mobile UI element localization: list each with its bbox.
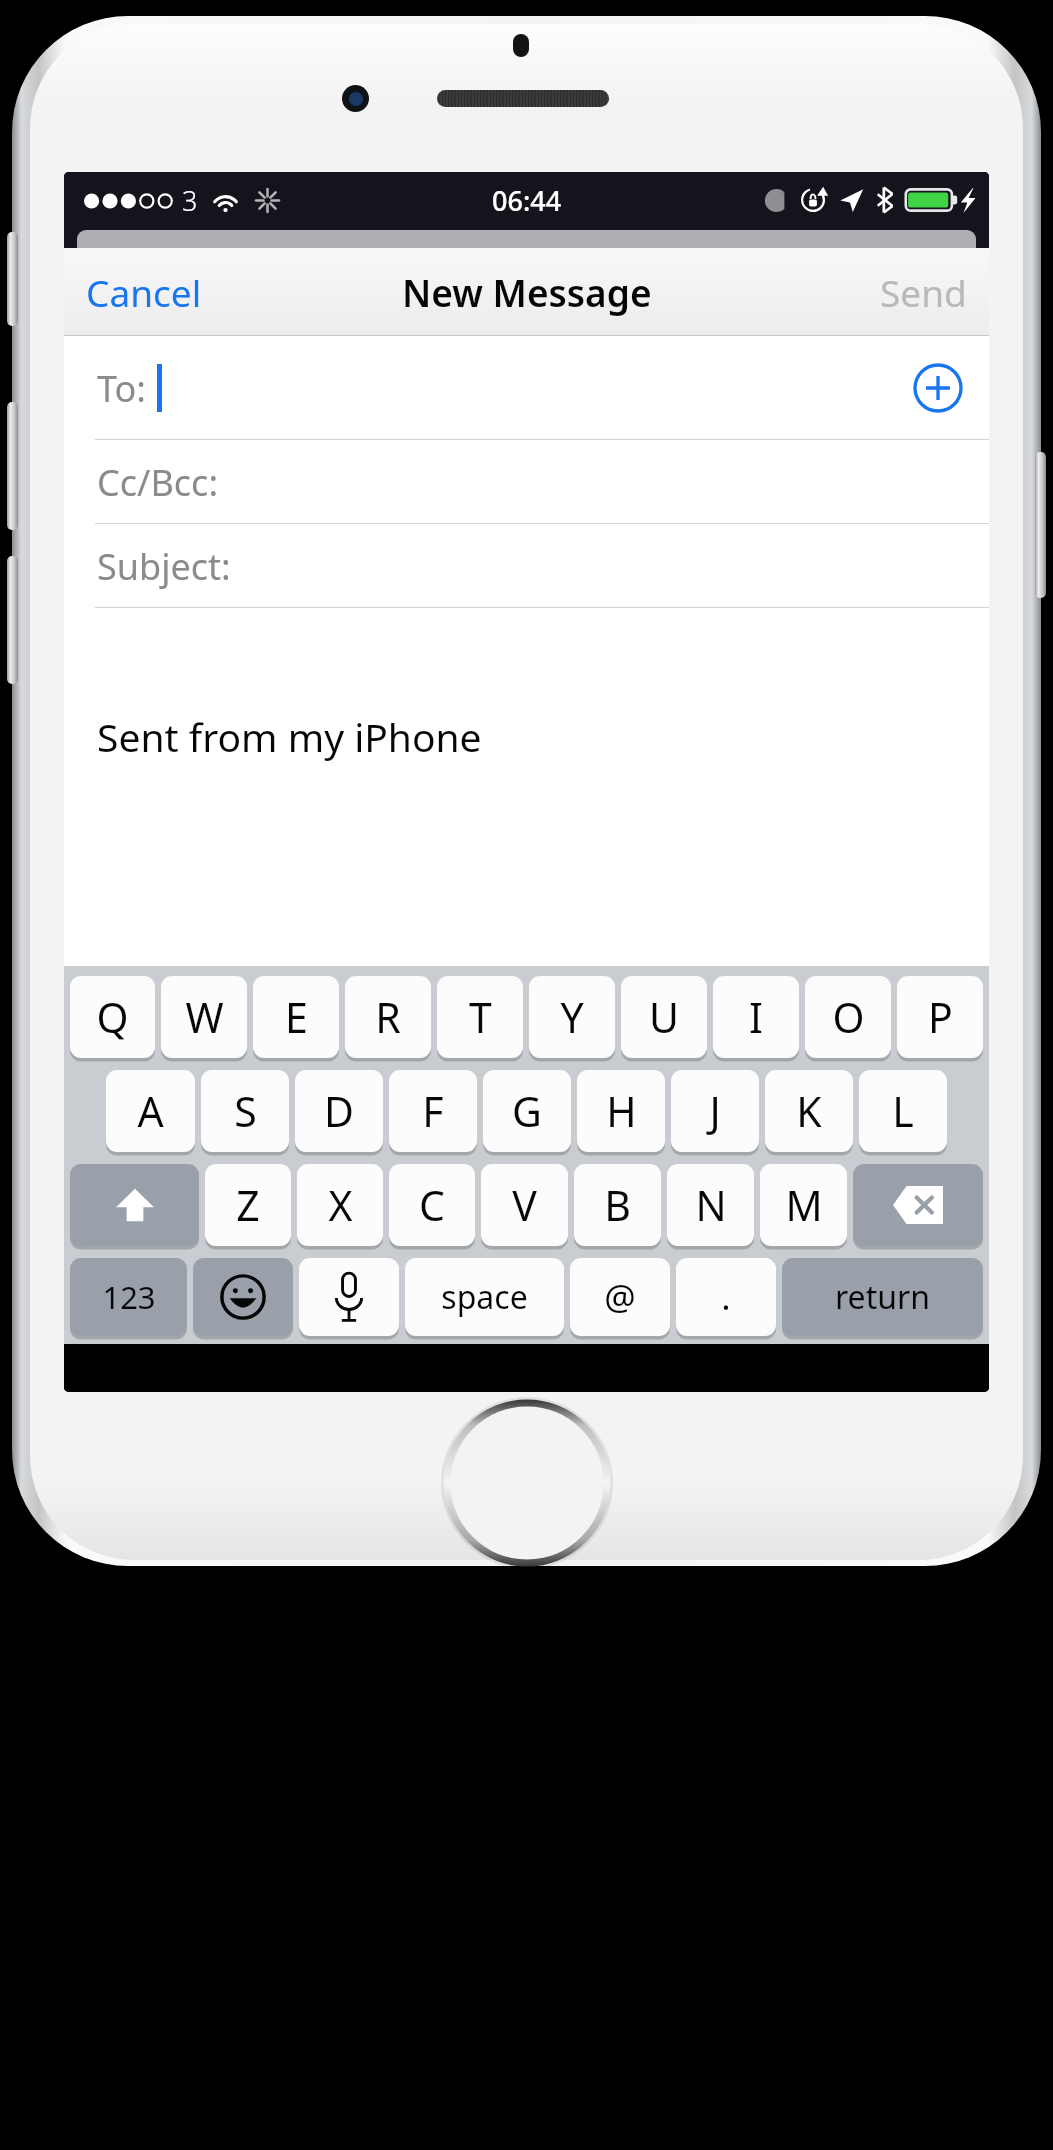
staticText: G <box>512 1083 542 1139</box>
staticText: F <box>422 1083 444 1139</box>
button[interactable]: To: <box>64 336 989 440</box>
button[interactable]: Emoji <box>193 1258 293 1336</box>
button[interactable]: W <box>161 976 247 1058</box>
staticText: B <box>604 1177 631 1233</box>
staticText: 3 <box>182 182 198 219</box>
button[interactable]: E <box>253 976 339 1058</box>
staticText: Send <box>880 267 967 317</box>
staticText: D <box>324 1083 354 1139</box>
staticText: To: <box>97 364 146 413</box>
staticText: 06:44 <box>492 182 562 219</box>
staticText: Y <box>560 989 584 1045</box>
staticText: 123 <box>102 1276 156 1318</box>
button[interactable]: Send <box>858 249 989 335</box>
button[interactable]: P <box>897 976 983 1058</box>
button[interactable]: Y <box>529 976 615 1058</box>
staticText: W <box>185 989 224 1045</box>
button[interactable]: return <box>782 1258 983 1336</box>
button[interactable]: C <box>389 1164 475 1246</box>
staticText: Z <box>236 1177 260 1233</box>
button[interactable]: Add contact <box>909 359 967 417</box>
button[interactable]: Numbers <box>70 1258 187 1336</box>
staticText: M <box>785 1177 823 1233</box>
button[interactable]: @ <box>570 1258 670 1336</box>
staticText: return <box>835 1275 930 1319</box>
staticText: @ <box>604 1273 636 1321</box>
staticText: Cc/Bcc: <box>97 458 219 507</box>
button[interactable]: A <box>106 1070 195 1152</box>
button[interactable]: M <box>760 1164 847 1246</box>
button[interactable]: Sent from my iPhone <box>64 608 989 966</box>
staticText: C <box>419 1177 445 1233</box>
staticText: P <box>928 989 953 1045</box>
staticText: A <box>137 1083 164 1139</box>
staticText: H <box>606 1083 637 1139</box>
button[interactable]: F <box>389 1070 477 1152</box>
button[interactable]: B <box>574 1164 661 1246</box>
button[interactable]: J <box>671 1070 759 1152</box>
button[interactable]: H <box>577 1070 665 1152</box>
button[interactable]: Shift <box>70 1164 199 1246</box>
staticText: O <box>832 989 865 1045</box>
button[interactable]: L <box>859 1070 947 1152</box>
staticText: E <box>285 989 308 1045</box>
button[interactable]: Cc/Bcc: <box>64 440 989 524</box>
button[interactable]: V <box>481 1164 568 1246</box>
staticText: . <box>721 1273 731 1321</box>
button[interactable]: G <box>483 1070 571 1152</box>
button[interactable]: space <box>405 1258 564 1336</box>
button[interactable]: Subject: <box>64 524 989 608</box>
button[interactable]: I <box>713 976 799 1058</box>
staticText: New Message <box>402 267 652 317</box>
staticText: S <box>234 1083 257 1139</box>
button[interactable]: Dictate <box>299 1258 399 1336</box>
button[interactable]: S <box>201 1070 289 1152</box>
button[interactable]: R <box>345 976 431 1058</box>
button[interactable]: U <box>621 976 707 1058</box>
button[interactable]: X <box>297 1164 383 1246</box>
button[interactable]: Cancel <box>64 249 224 335</box>
button[interactable]: . <box>676 1258 776 1336</box>
staticText: V <box>512 1177 537 1233</box>
staticText: T <box>469 989 492 1045</box>
staticText: L <box>892 1083 914 1139</box>
staticText: Cancel <box>86 267 202 317</box>
button[interactable]: O <box>805 976 891 1058</box>
staticText: Q <box>96 989 129 1045</box>
button[interactable]: K <box>765 1070 853 1152</box>
button[interactable]: N <box>667 1164 754 1246</box>
staticText: space <box>441 1275 528 1319</box>
staticText: J <box>709 1083 721 1139</box>
button[interactable]: D <box>295 1070 383 1152</box>
button[interactable]: Z <box>205 1164 291 1246</box>
staticText: U <box>649 989 679 1045</box>
staticText: Sent from my iPhone <box>97 710 482 763</box>
staticText: Subject: <box>97 542 231 591</box>
button[interactable]: Backspace <box>853 1164 983 1246</box>
staticText: X <box>328 1177 353 1233</box>
staticText: K <box>796 1083 822 1139</box>
staticText: R <box>375 989 401 1045</box>
staticText: I <box>749 989 763 1045</box>
button[interactable]: T <box>437 976 523 1058</box>
button[interactable]: Q <box>70 976 155 1058</box>
staticText: N <box>695 1177 727 1233</box>
